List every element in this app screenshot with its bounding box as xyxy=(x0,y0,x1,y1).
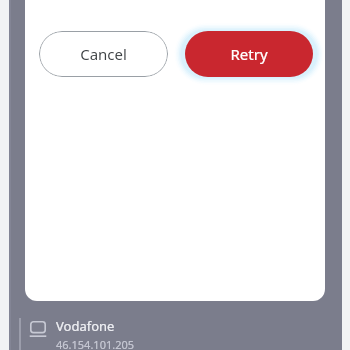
button[interactable]: Cancel xyxy=(39,31,168,77)
staticText: Vodafone xyxy=(56,317,115,335)
staticText: Cancel xyxy=(80,44,127,64)
button[interactable]: Device xyxy=(19,317,219,350)
other: Device xyxy=(29,320,47,338)
staticText: Retry xyxy=(230,44,268,64)
staticText: 46.154.101.205 xyxy=(56,337,135,350)
button[interactable]: Retry xyxy=(185,31,313,77)
